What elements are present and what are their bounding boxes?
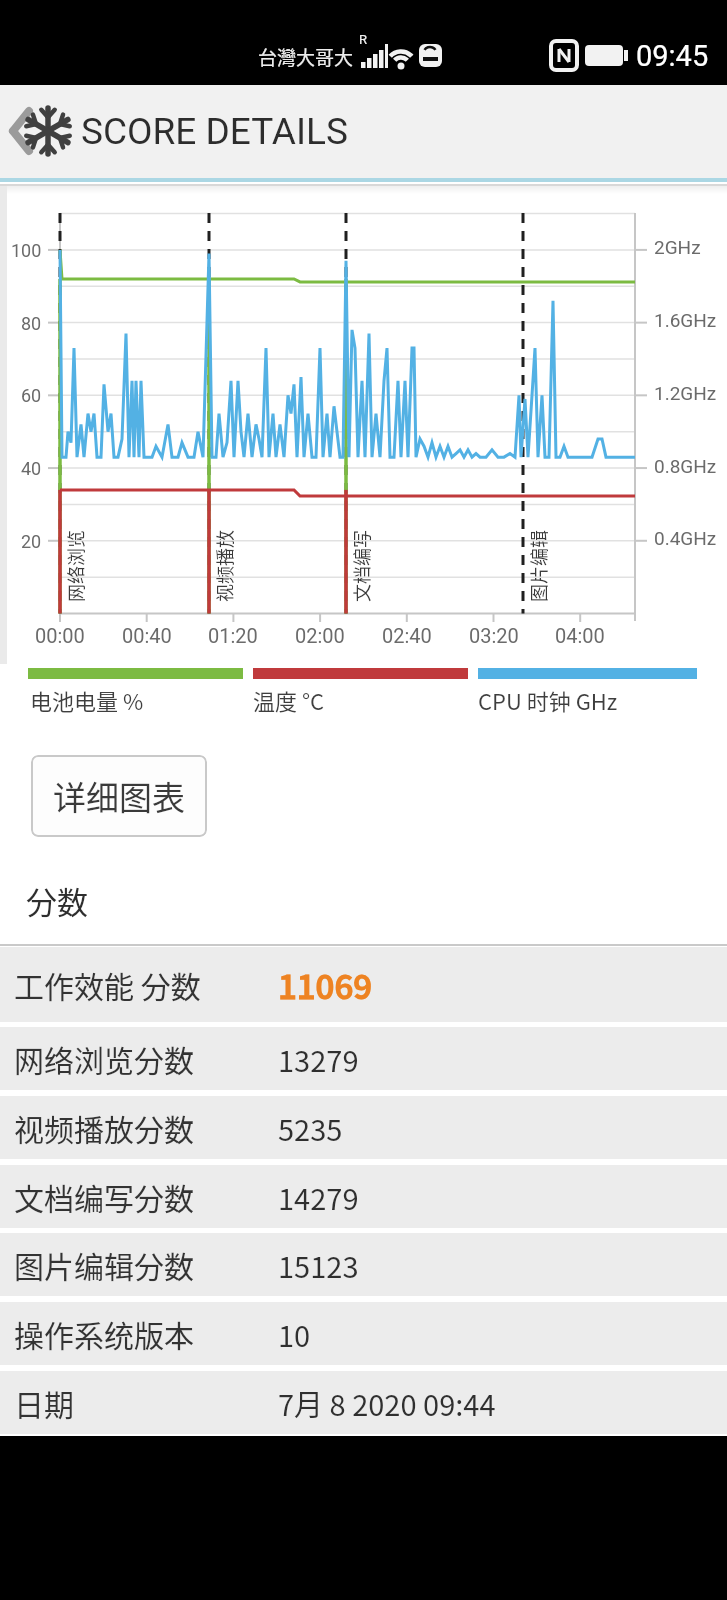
- staticText: 80: [21, 313, 42, 334]
- staticText: 02:00: [295, 624, 345, 647]
- staticText: 图片编辑: [525, 530, 549, 602]
- staticText: 台灣大哥大: [258, 43, 354, 71]
- button[interactable]: 详细图表: [31, 755, 207, 837]
- staticText: 日期: [14, 1381, 74, 1424]
- staticText: 详细图表: [53, 772, 185, 820]
- staticText: 工作效能 分数: [14, 963, 201, 1006]
- staticText: 10: [278, 1313, 311, 1355]
- staticText: 5235: [278, 1107, 343, 1149]
- staticText: 15123: [278, 1244, 359, 1286]
- button[interactable]: 图片编辑分数: [0, 1233, 727, 1296]
- staticText: 文档编写: [348, 530, 372, 602]
- staticText: 11069: [278, 961, 373, 1009]
- button[interactable]: 文档编写分数: [0, 1165, 727, 1228]
- staticText: 13279: [278, 1038, 359, 1080]
- button[interactable]: 网络浏览分数: [0, 1027, 727, 1090]
- staticText: R: [359, 32, 368, 47]
- staticText: 网络浏览: [62, 530, 86, 602]
- staticText: 14279: [278, 1176, 359, 1218]
- button[interactable]: 日期: [0, 1371, 727, 1434]
- staticText: 温度 °C: [253, 684, 325, 716]
- staticText: SCORE DETAILS: [81, 110, 348, 153]
- button[interactable]: 视频播放分数: [0, 1096, 727, 1159]
- button[interactable]: 工作效能 分数: [0, 947, 727, 1022]
- staticText: 分数: [26, 878, 88, 923]
- staticText: 7月 8 2020 09:44: [278, 1382, 496, 1424]
- staticText: 60: [21, 385, 42, 406]
- staticText: 1.2GHz: [654, 382, 717, 404]
- staticText: 00:00: [35, 624, 85, 647]
- staticText: 01:20: [208, 624, 258, 647]
- staticText: 文档编写分数: [14, 1175, 194, 1218]
- staticText: 1.6GHz: [654, 309, 717, 331]
- staticText: 电池电量 %: [30, 684, 144, 716]
- staticText: 40: [21, 458, 42, 479]
- staticText: 2GHz: [654, 236, 701, 258]
- staticText: 图片编辑分数: [14, 1243, 194, 1286]
- button[interactable]: 操作系统版本: [0, 1302, 727, 1365]
- button[interactable]: SCORE DETAILS: [0, 85, 727, 178]
- staticText: 03:20: [469, 624, 519, 647]
- staticText: CPU 时钟 GHz: [478, 684, 618, 716]
- staticText: 09:45: [636, 39, 709, 73]
- staticText: 0.4GHz: [654, 527, 717, 549]
- staticText: 操作系统版本: [14, 1312, 194, 1355]
- staticText: 100: [11, 240, 42, 261]
- staticText: 02:40: [382, 624, 432, 647]
- staticText: 20: [21, 531, 42, 552]
- staticText: 04:00: [555, 624, 605, 647]
- staticText: 网络浏览分数: [14, 1037, 194, 1080]
- staticText: 00:40: [122, 624, 172, 647]
- staticText: 视频播放分数: [14, 1106, 194, 1149]
- staticText: 视频播放: [211, 530, 235, 602]
- staticText: 0.8GHz: [654, 455, 717, 477]
